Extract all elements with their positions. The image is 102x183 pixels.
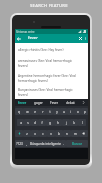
button[interactable]: j (62, 119, 70, 126)
staticText: j (66, 121, 67, 125)
staticText: SEARCH FEATURE (30, 3, 68, 9)
staticText: , (26, 142, 27, 146)
button[interactable]: p (81, 108, 88, 115)
staticText: u (63, 110, 65, 114)
button[interactable]: e (31, 108, 39, 115)
button[interactable]: w (23, 108, 31, 115)
staticText: z (26, 132, 28, 136)
staticText: m (74, 132, 77, 136)
staticText: debat (66, 101, 75, 105)
staticText: d (34, 121, 36, 125)
staticText: y (56, 110, 58, 114)
staticText: fever (18, 101, 27, 105)
button[interactable]: debat (62, 99, 78, 106)
button[interactable]: i (67, 108, 74, 115)
button[interactable]: f (38, 119, 46, 126)
button[interactable]: u (60, 108, 67, 115)
button[interactable]: h (54, 119, 62, 126)
staticText: i (70, 110, 71, 114)
button[interactable]: l (78, 119, 86, 126)
button[interactable]: ?123 (15, 140, 24, 147)
staticText: e (34, 110, 36, 114)
staticText: a (20, 121, 22, 125)
staticText: f (41, 121, 43, 125)
button[interactable]: allergic rhinitis (See: Hay fever) (15, 43, 88, 56)
button[interactable]: z (23, 130, 31, 137)
button[interactable]: More suggestions (78, 99, 88, 106)
button[interactable]: r (39, 108, 46, 115)
staticText: q (18, 110, 20, 114)
staticText: n (66, 132, 68, 136)
staticText: fever (28, 35, 38, 41)
button[interactable]: Buscar (66, 140, 88, 147)
staticText: Buscar (72, 142, 82, 146)
button[interactable]: q (15, 108, 23, 115)
button[interactable]: gager (30, 99, 46, 106)
staticText: Búsqueda inteligente (30, 142, 61, 146)
staticText: w (26, 110, 29, 114)
button[interactable]: fever (15, 99, 30, 106)
button[interactable]: Búsqueda inteligente (29, 140, 61, 147)
button[interactable]: Argentine hemorrhagic fever (See: Viral … (15, 70, 88, 85)
staticText: . (63, 142, 64, 146)
staticText: c (42, 132, 44, 136)
button[interactable]: b (55, 130, 63, 137)
staticText: v (50, 132, 52, 136)
button[interactable]: Bunyaviruses (See: Viral hemorrhagic fev… (15, 85, 88, 99)
staticText: Bunyaviruses (See: Viral hemorrhagic fev… (18, 88, 81, 96)
staticText: Fever (50, 101, 59, 105)
staticText: b (58, 132, 60, 136)
staticText: x (34, 132, 36, 136)
button[interactable]: t (46, 108, 53, 115)
staticText: l (82, 121, 83, 125)
staticText: r (42, 110, 44, 114)
button[interactable]: Backspace (79, 130, 88, 137)
staticText: h (57, 121, 59, 125)
button[interactable]: x (31, 130, 39, 137)
button[interactable]: o (74, 108, 81, 115)
button[interactable]: Back (15, 34, 23, 43)
button[interactable]: , (24, 140, 29, 147)
button[interactable]: y (53, 108, 60, 115)
button[interactable]: d (31, 119, 38, 126)
button[interactable]: g (46, 119, 54, 126)
button[interactable]: v (47, 130, 55, 137)
button[interactable]: Shift (15, 130, 23, 137)
button[interactable]: arenaviruses (See: Viral hemorrhagic fev… (15, 56, 88, 70)
button[interactable]: Clear query (77, 34, 83, 43)
staticText: allergic rhinitis (See: Hay fever) (18, 48, 64, 52)
staticText: gager (34, 101, 43, 105)
button[interactable]: . (61, 140, 66, 147)
button[interactable]: c (39, 130, 47, 137)
button[interactable]: n (63, 130, 71, 137)
staticText: o (77, 110, 79, 114)
staticText: s (27, 121, 29, 125)
staticText: ?123 (16, 142, 23, 146)
button[interactable]: Fever (46, 99, 62, 106)
staticText: k (73, 121, 75, 125)
staticText: p (84, 110, 86, 114)
staticText: arenaviruses (See: Viral hemorrhagic fev… (18, 59, 81, 67)
staticText: t (49, 110, 51, 114)
button[interactable]: m (71, 130, 79, 137)
button[interactable]: k (70, 119, 78, 126)
staticText: g (49, 121, 51, 125)
staticText: Argentine hemorrhagic fever (See: Viral … (18, 74, 81, 82)
button[interactable]: s (24, 119, 31, 126)
staticText: Síntomas entre (16, 30, 35, 34)
button[interactable]: a (17, 119, 24, 126)
button[interactable]: More options (83, 34, 88, 43)
